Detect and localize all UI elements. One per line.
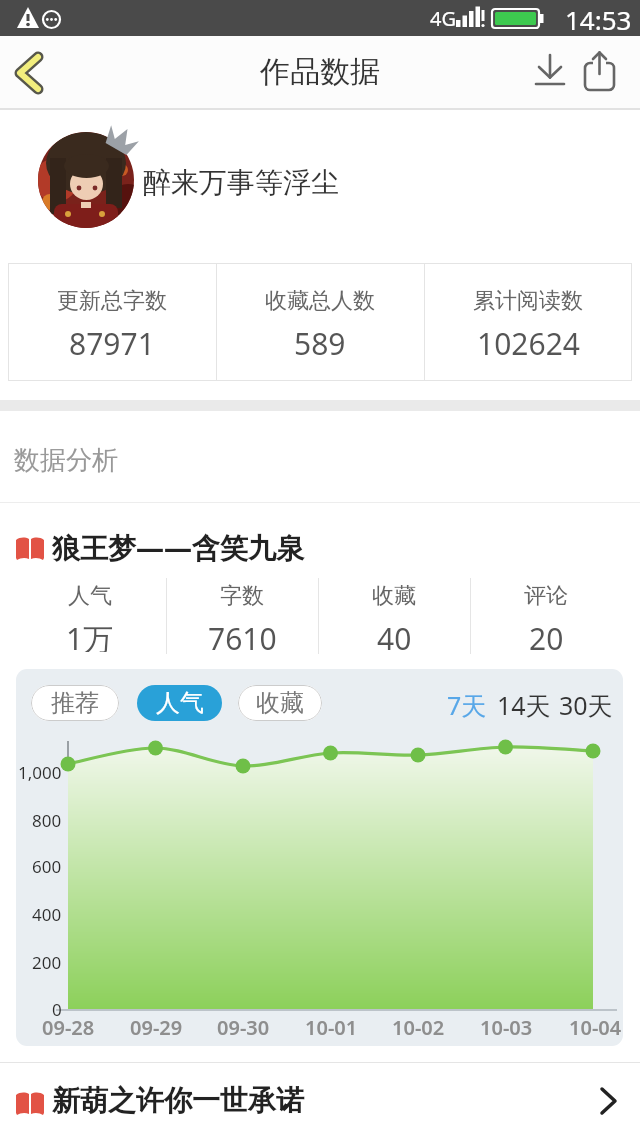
button[interactable]: 新葫之许你一世承诺 <box>0 1063 640 1138</box>
staticText: 人气 <box>68 582 112 608</box>
button[interactable] <box>0 44 64 104</box>
staticText: 400 <box>32 903 62 926</box>
staticText: 狼王梦——含笑九泉 <box>52 528 305 566</box>
staticText: 10-03 <box>480 1014 533 1041</box>
staticText: 4G <box>430 5 456 32</box>
staticText: 新葫之许你一世承诺 <box>52 1083 304 1118</box>
staticText: 200 <box>32 951 62 974</box>
button[interactable]: 推荐 <box>31 685 119 721</box>
staticText: 87971 <box>69 323 155 359</box>
button[interactable]: 收藏 <box>238 685 322 721</box>
button[interactable]: 人气 <box>137 685 222 721</box>
button[interactable]: 更新总字数 <box>8 263 216 381</box>
button[interactable]: 7天 <box>442 688 492 718</box>
staticText: 人气 <box>156 688 204 718</box>
staticText: 30天 <box>559 688 613 718</box>
staticText: 更新总字数 <box>57 287 167 315</box>
staticText: 作品数据 <box>260 53 380 91</box>
button[interactable]: 狼王梦——含笑九泉 <box>52 528 472 566</box>
staticText: 09-29 <box>130 1014 183 1041</box>
button[interactable] <box>38 132 134 228</box>
staticText: 1,000 <box>18 761 62 784</box>
button[interactable]: 收藏 <box>318 572 470 660</box>
staticText: 09-28 <box>42 1014 95 1041</box>
staticText: 7天 <box>447 688 487 718</box>
staticText: 字数 <box>220 582 264 608</box>
button[interactable]: 30天 <box>558 688 614 718</box>
staticText: 14:53 <box>565 2 632 34</box>
button[interactable]: 14天 <box>496 688 552 718</box>
staticText: 10-01 <box>305 1014 358 1041</box>
button[interactable]: 收藏总人数 <box>216 263 424 381</box>
button[interactable] <box>528 49 572 95</box>
staticText: 600 <box>32 855 62 878</box>
staticText: 09-30 <box>217 1014 270 1041</box>
staticText: 1万 <box>66 618 114 652</box>
staticText: 累计阅读数 <box>473 287 583 315</box>
staticText: 收藏 <box>372 582 416 608</box>
staticText: 800 <box>32 809 62 832</box>
button[interactable]: 人气 <box>14 572 166 660</box>
button[interactable]: 累计阅读数 <box>424 263 632 381</box>
staticText: 收藏总人数 <box>265 287 375 315</box>
button[interactable]: 评论 <box>470 572 622 660</box>
staticText: 10-04 <box>569 1014 622 1041</box>
staticText: 589 <box>294 323 346 359</box>
staticText: 20 <box>529 618 564 652</box>
staticText: 14天 <box>497 688 551 718</box>
button[interactable]: 字数 <box>166 572 318 660</box>
staticText: 0 <box>52 998 62 1021</box>
staticText: 醉来万事等浮尘 <box>143 165 339 200</box>
button[interactable] <box>580 49 624 97</box>
staticText: 数据分析 <box>14 444 118 474</box>
staticText: 推荐 <box>51 688 99 718</box>
staticText: 10-02 <box>392 1014 445 1041</box>
staticText: 102624 <box>477 323 580 359</box>
staticText: 收藏 <box>256 688 304 718</box>
staticText: 40 <box>377 618 412 652</box>
staticText: 评论 <box>524 582 568 608</box>
staticText: 7610 <box>208 618 277 652</box>
